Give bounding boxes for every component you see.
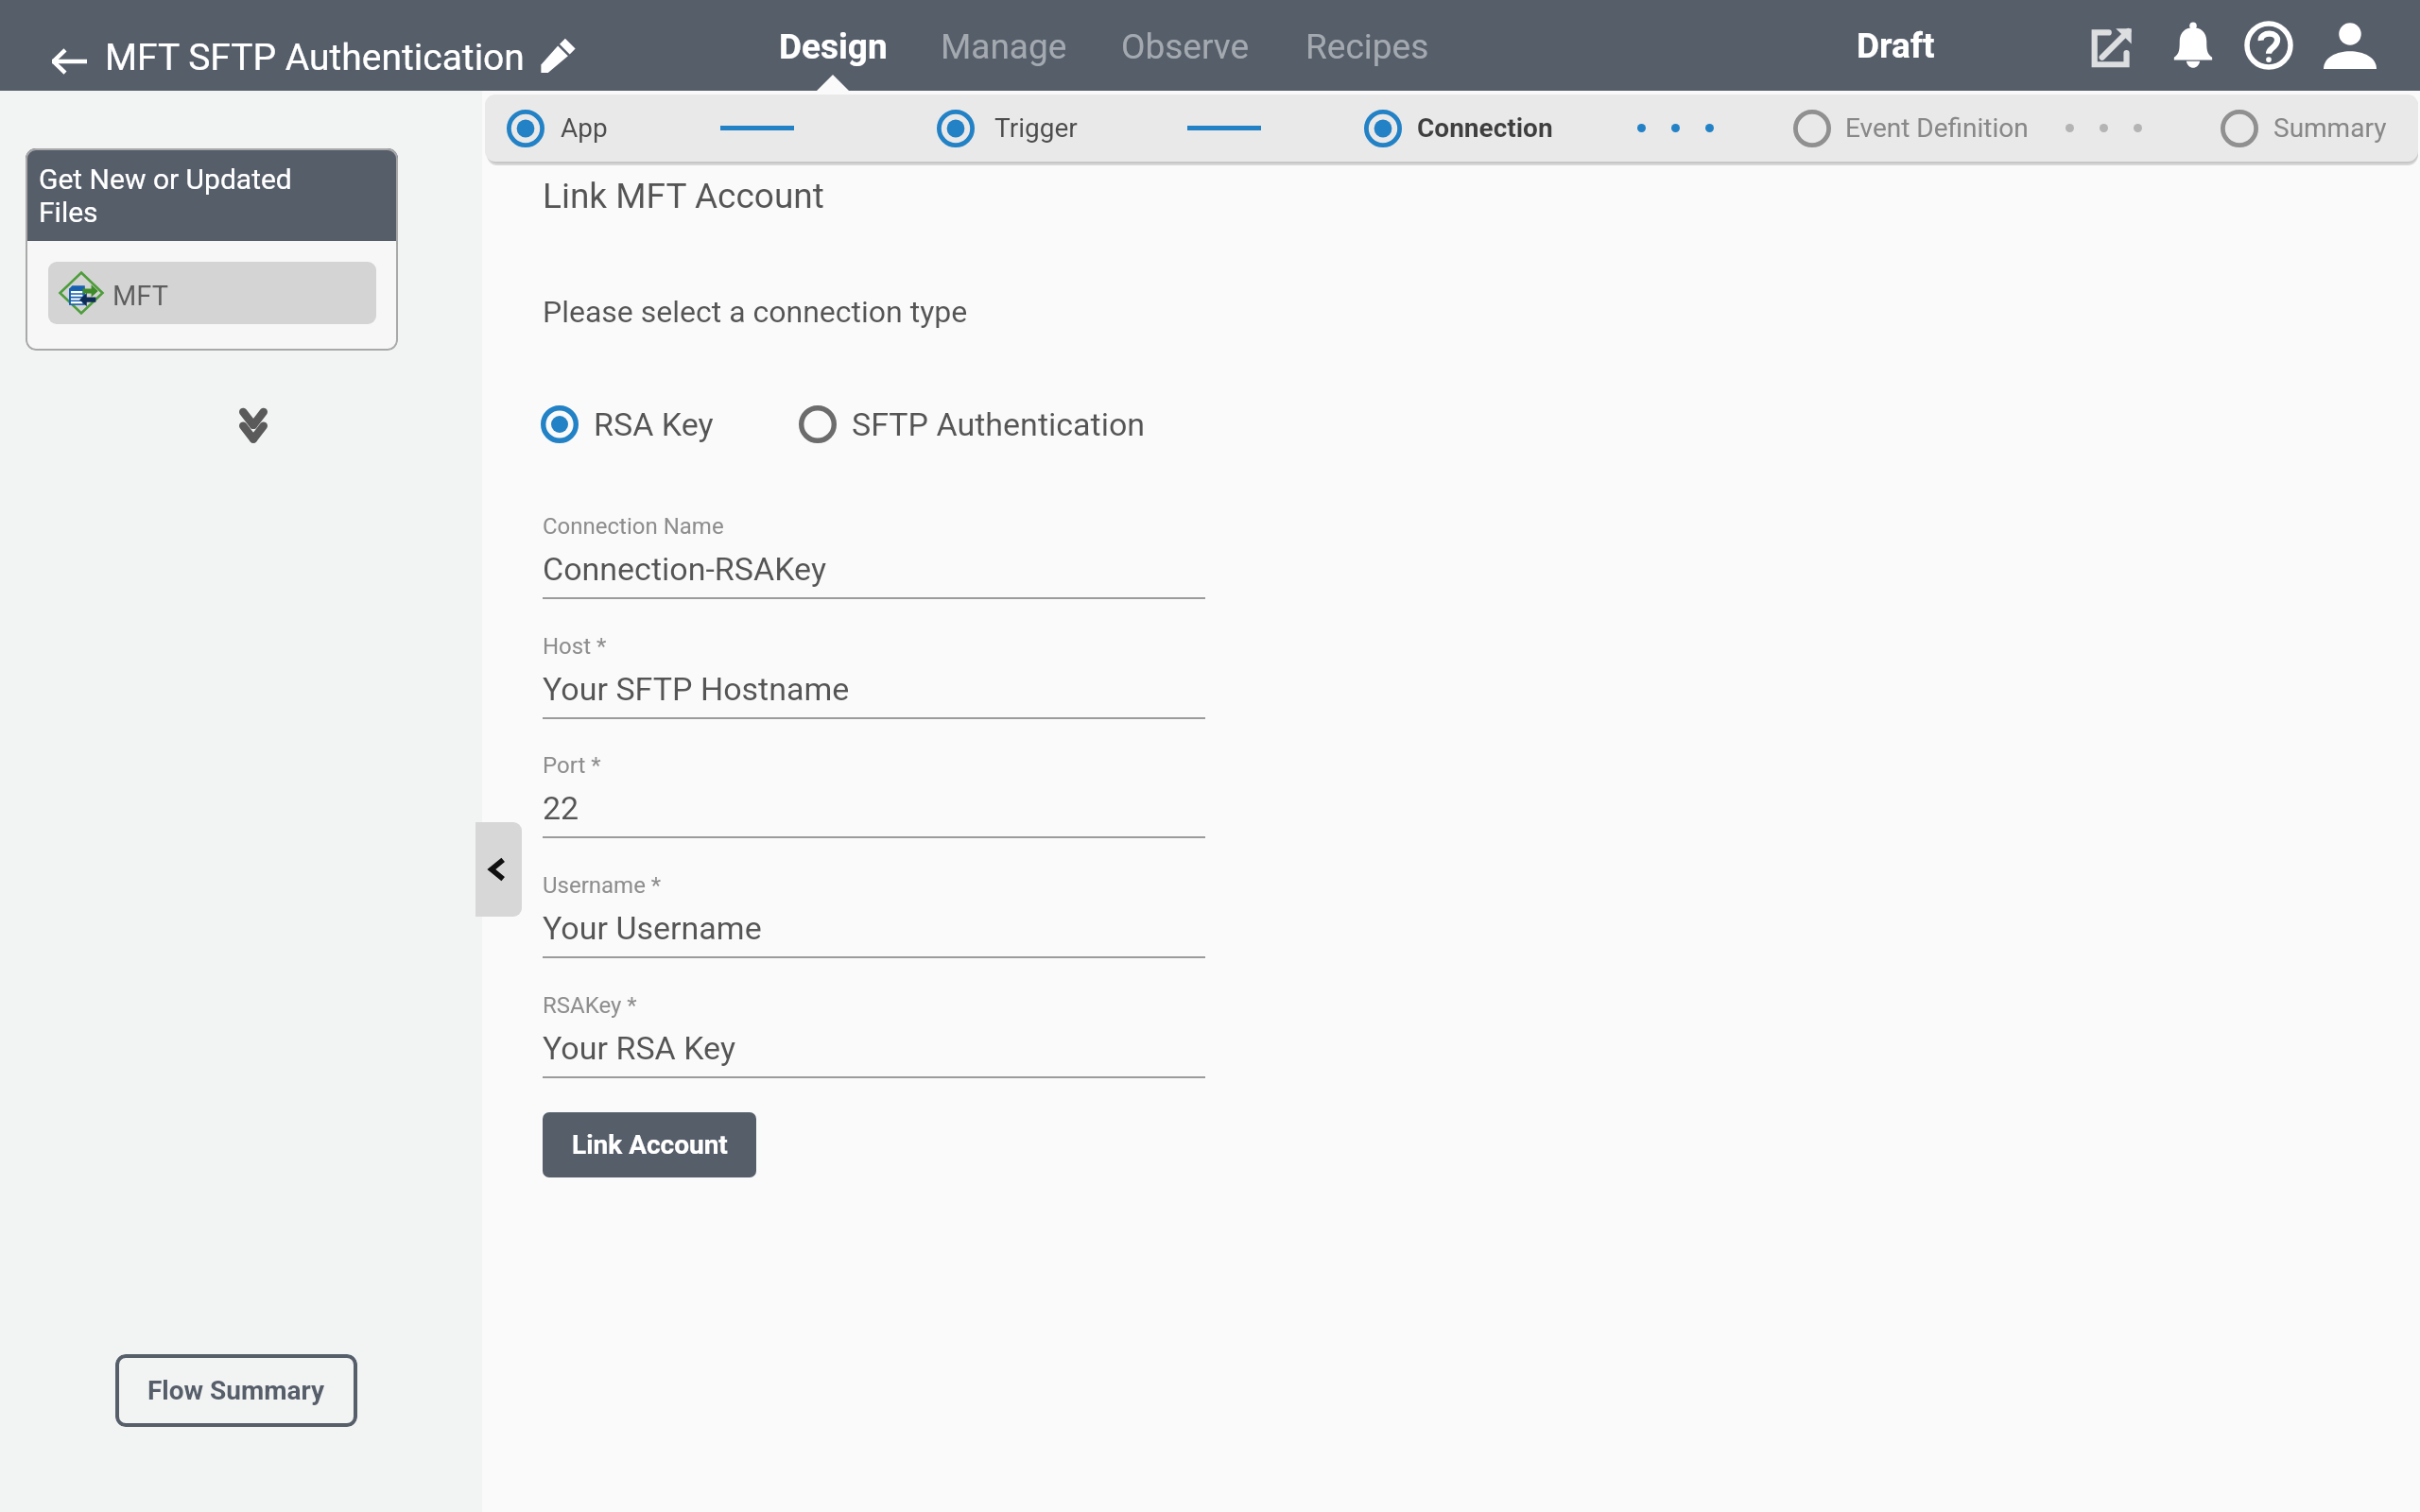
button[interactable]: Help xyxy=(2237,13,2301,77)
button[interactable]: Link Account xyxy=(543,1112,756,1177)
staticText: Get New or Updated Files xyxy=(39,163,292,229)
button[interactable]: Observe xyxy=(1096,1,1275,92)
staticText: App xyxy=(561,112,608,144)
staticText: MFT SFTP Authentication xyxy=(105,36,525,79)
button[interactable]: Notifications xyxy=(2161,13,2225,77)
staticText: Draft xyxy=(1857,26,1935,66)
staticText: Event Definition xyxy=(1845,112,2029,144)
staticText: Username * xyxy=(543,872,662,899)
staticText: Connection xyxy=(1417,112,1553,144)
staticText: Your Username xyxy=(543,909,762,947)
staticText: RSA Key xyxy=(594,405,714,443)
button[interactable]: MFT xyxy=(48,262,376,324)
staticText: RSAKey * xyxy=(543,992,637,1019)
staticText: Recipes xyxy=(1305,26,1429,67)
button[interactable]: Design xyxy=(754,1,911,92)
button[interactable]: Recipes xyxy=(1280,1,1455,92)
staticText: Summary xyxy=(2273,112,2387,144)
button[interactable]: Rename xyxy=(527,25,589,85)
staticText: Your SFTP Hostname xyxy=(543,670,850,708)
button[interactable]: App xyxy=(501,94,623,162)
staticText: Flow Summary xyxy=(147,1375,325,1406)
staticText: Host * xyxy=(543,633,607,660)
staticText: Trigger xyxy=(994,112,1078,144)
staticText: Connection-RSAKey xyxy=(543,550,826,588)
staticText: Design xyxy=(779,26,888,67)
staticText: Link MFT Account xyxy=(543,176,824,216)
button[interactable]: Flow Summary xyxy=(115,1354,357,1427)
staticText: Observe xyxy=(1121,26,1250,67)
button[interactable]: Open in new tab xyxy=(2080,13,2144,77)
staticText: Your RSA Key xyxy=(543,1029,735,1067)
staticText: Please select a connection type xyxy=(543,294,968,330)
staticText: Manage xyxy=(941,26,1067,67)
button[interactable]: Event Definition xyxy=(1788,94,2023,162)
staticText: Port * xyxy=(543,752,601,779)
button[interactable]: Collapse panel xyxy=(475,822,522,917)
button[interactable]: Get New or Updated Files xyxy=(26,148,398,351)
staticText: Connection Name xyxy=(543,513,724,540)
staticText: 22 xyxy=(543,789,579,827)
staticText: SFTP Authentication xyxy=(852,405,1146,443)
button[interactable]: Account xyxy=(2318,13,2382,77)
button[interactable]: Manage xyxy=(917,1,1091,92)
button[interactable]: Connection xyxy=(1358,94,1545,162)
button[interactable]: Summary xyxy=(2215,94,2389,162)
button[interactable]: Expand steps xyxy=(225,392,282,455)
staticText: MFT xyxy=(112,280,168,312)
button[interactable]: RSA Key xyxy=(541,403,714,446)
button[interactable]: Back xyxy=(35,37,101,86)
button[interactable]: SFTP Authentication xyxy=(799,403,1146,446)
button[interactable]: Trigger xyxy=(931,94,1115,162)
staticText: Link Account xyxy=(572,1129,728,1160)
